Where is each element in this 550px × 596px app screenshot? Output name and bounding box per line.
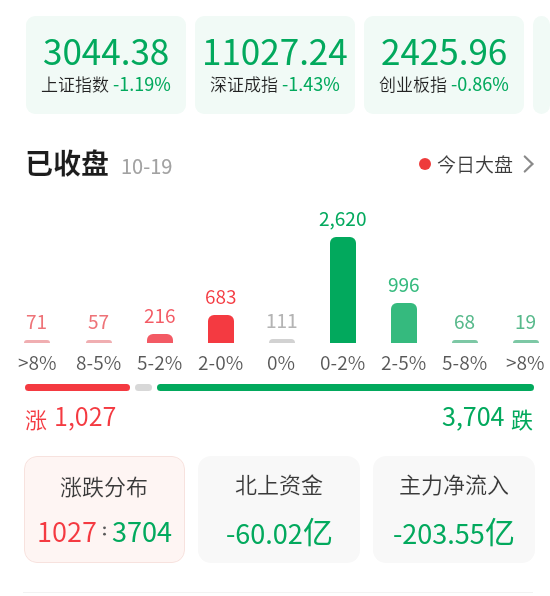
staticText: 北上资金 xyxy=(235,467,324,499)
staticText: 创业板指 xyxy=(379,71,447,96)
staticText: 8-5% xyxy=(76,348,122,370)
staticText: 2-5% xyxy=(381,348,427,370)
staticText: 3,704 xyxy=(442,397,505,433)
button[interactable]: 今日大盘 xyxy=(417,146,536,182)
staticText: 1,027 xyxy=(54,397,117,433)
button[interactable]: 主力净流入 xyxy=(373,456,535,563)
button[interactable]: 3044.38 xyxy=(26,16,186,114)
staticText: -0.86% xyxy=(451,70,509,96)
staticText: 深证成指 xyxy=(210,71,278,96)
staticText: >8% xyxy=(506,348,545,370)
staticText: 3044.38 xyxy=(43,24,170,75)
staticText: 亿 xyxy=(485,508,515,551)
staticText: -1.43% xyxy=(282,70,340,96)
staticText: >8% xyxy=(18,348,57,370)
staticText: 683 xyxy=(205,282,237,310)
button[interactable]: 11027.24 xyxy=(195,16,355,114)
staticText: 57 xyxy=(88,307,110,335)
staticText: 3704 xyxy=(112,511,172,550)
staticText: 0% xyxy=(267,348,296,370)
staticText: 111 xyxy=(266,306,298,334)
staticText: 已收盘 xyxy=(25,142,110,183)
staticText: 主力净流入 xyxy=(399,467,510,499)
staticText: 跌 xyxy=(511,402,534,434)
staticText: -203.55 xyxy=(393,513,485,552)
staticText: 2-0% xyxy=(198,348,244,370)
button[interactable]: 北上资金 xyxy=(198,456,360,563)
staticText: 2425.96 xyxy=(381,24,508,75)
staticText: 今日大盘 xyxy=(437,150,514,178)
staticText: 亿 xyxy=(303,508,333,551)
staticText: 2,620 xyxy=(319,204,367,232)
staticText: 11027.24 xyxy=(202,24,348,75)
staticText: 5-2% xyxy=(137,348,183,370)
staticText: 68 xyxy=(454,307,476,335)
staticText: 涨 xyxy=(25,402,48,434)
staticText: 216 xyxy=(144,301,176,329)
staticText: 1027 xyxy=(37,511,97,550)
staticText: -60.02 xyxy=(226,513,303,552)
staticText: -1.19% xyxy=(113,70,171,96)
staticText: 0-2% xyxy=(320,348,366,370)
staticText: 996 xyxy=(388,270,420,298)
button[interactable]: 2425.96 xyxy=(364,16,524,114)
staticText: 涨跌分布 xyxy=(60,469,149,501)
staticText: 上证指数 xyxy=(41,71,109,96)
button[interactable]: 涨跌分布 xyxy=(24,456,185,563)
staticText: 19 xyxy=(515,307,537,335)
staticText: 5-8% xyxy=(442,348,488,370)
staticText: 71 xyxy=(26,307,48,335)
staticText: 10-19 xyxy=(121,151,173,180)
